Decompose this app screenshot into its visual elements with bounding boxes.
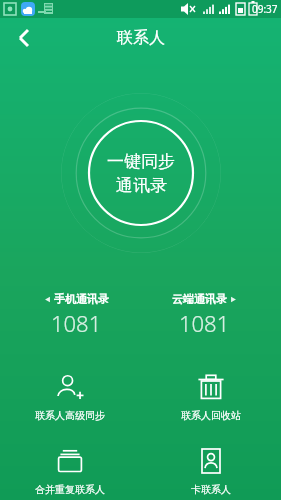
button[interactable]: 一键同步 (61, 93, 221, 253)
button[interactable]: 手机通讯录 (12, 288, 140, 342)
staticText: 云端通讯录 (172, 292, 227, 306)
staticText: 手机通讯录 (54, 292, 109, 306)
staticText: 联系人 (117, 28, 165, 48)
button[interactable]: 联系人高级同步 (0, 368, 140, 426)
staticText: 合并重复联系人 (35, 483, 105, 496)
button[interactable]: Back (6, 20, 42, 56)
button[interactable]: 云端通讯录 (140, 288, 269, 342)
button[interactable]: 合并重复联系人 (0, 442, 140, 500)
staticText: 09:37 (252, 2, 278, 16)
staticText: 联系人高级同步 (35, 409, 105, 422)
staticText: 卡联系人 (191, 483, 231, 496)
staticText: 联系人回收站 (181, 409, 241, 422)
button[interactable]: 联系人回收站 (140, 368, 281, 426)
button[interactable]: 卡联系人 (140, 442, 281, 500)
staticText: 通讯录 (116, 175, 167, 196)
staticText: 1081 (51, 308, 102, 338)
staticText: 1081 (179, 308, 230, 338)
staticText: 一键同步 (107, 151, 175, 172)
